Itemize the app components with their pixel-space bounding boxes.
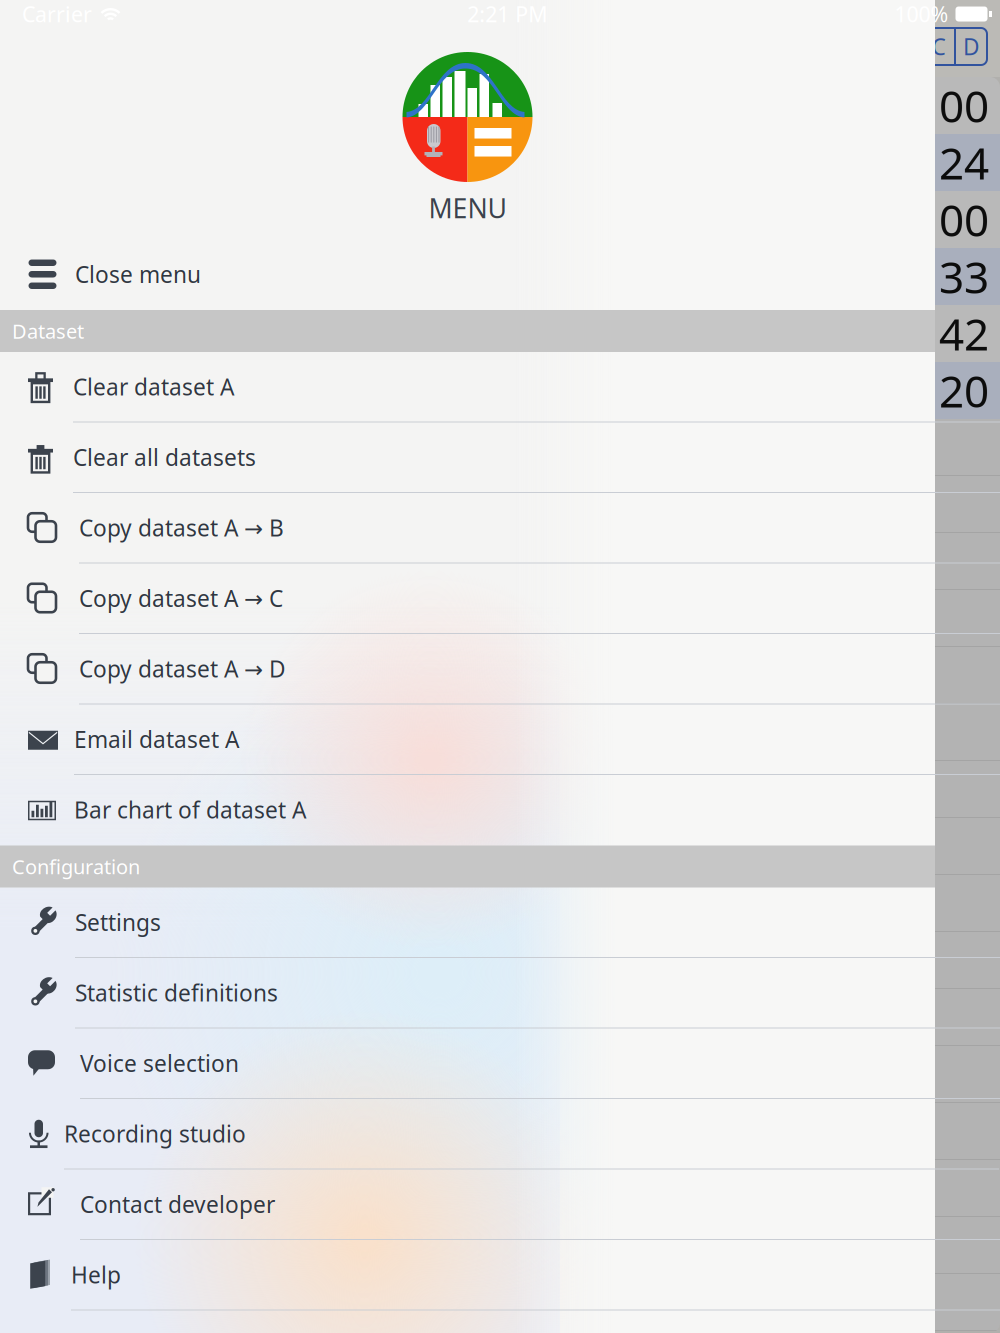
staticText: Clear dataset A [73, 372, 234, 402]
staticText: Email dataset A [74, 724, 239, 754]
button[interactable]: Recording studio [0, 1099, 935, 1168]
staticText: Carrier [22, 0, 92, 28]
button[interactable]: Copy dataset A → D [0, 634, 935, 703]
staticText: 24 [939, 133, 989, 192]
staticText: Contact developer [80, 1189, 275, 1219]
staticText: MENU [428, 190, 506, 226]
staticText: 33 [939, 247, 989, 306]
button[interactable]: Statistic definitions [0, 958, 935, 1027]
staticText: Clear all datasets [73, 442, 256, 472]
button[interactable]: Clear all datasets [0, 422, 935, 492]
staticText: Close menu [75, 259, 201, 289]
button[interactable]: Close menu [0, 239, 935, 309]
staticText: Voice selection [80, 1048, 239, 1078]
staticText: C [931, 31, 945, 61]
button[interactable]: Bar chart of dataset A [0, 775, 935, 844]
button[interactable]: Email dataset A [0, 704, 935, 774]
staticText: Help [71, 1260, 121, 1290]
staticText: 00 [939, 76, 989, 135]
staticText: Copy dataset A → B [79, 513, 284, 543]
staticText: Statistic definitions [75, 978, 278, 1008]
staticText: 42 [939, 304, 989, 363]
button[interactable]: Copy dataset A → C [0, 563, 935, 633]
staticText: D [963, 31, 980, 61]
button[interactable]: Clear dataset A [0, 352, 935, 421]
staticText: 00 [939, 190, 989, 249]
button[interactable]: Settings [0, 887, 935, 957]
button[interactable]: Copy dataset A → B [0, 493, 935, 562]
button[interactable]: D [956, 28, 987, 65]
staticText: 20 [939, 361, 989, 420]
staticText: Bar chart of dataset A [74, 795, 306, 825]
staticText: Configuration [12, 853, 140, 880]
button[interactable]: Help [0, 1240, 935, 1309]
staticText: 100% [894, 0, 948, 28]
staticText: 2:21 PM [467, 0, 547, 28]
staticText: Copy dataset A → D [79, 654, 286, 684]
staticText: Recording studio [64, 1119, 246, 1149]
staticText: Dataset [12, 318, 84, 344]
staticText: Settings [75, 907, 161, 937]
button[interactable]: Voice selection [0, 1028, 935, 1098]
button[interactable]: C [923, 28, 954, 65]
button[interactable]: Contact developer [0, 1169, 935, 1239]
staticText: Copy dataset A → C [79, 583, 283, 613]
